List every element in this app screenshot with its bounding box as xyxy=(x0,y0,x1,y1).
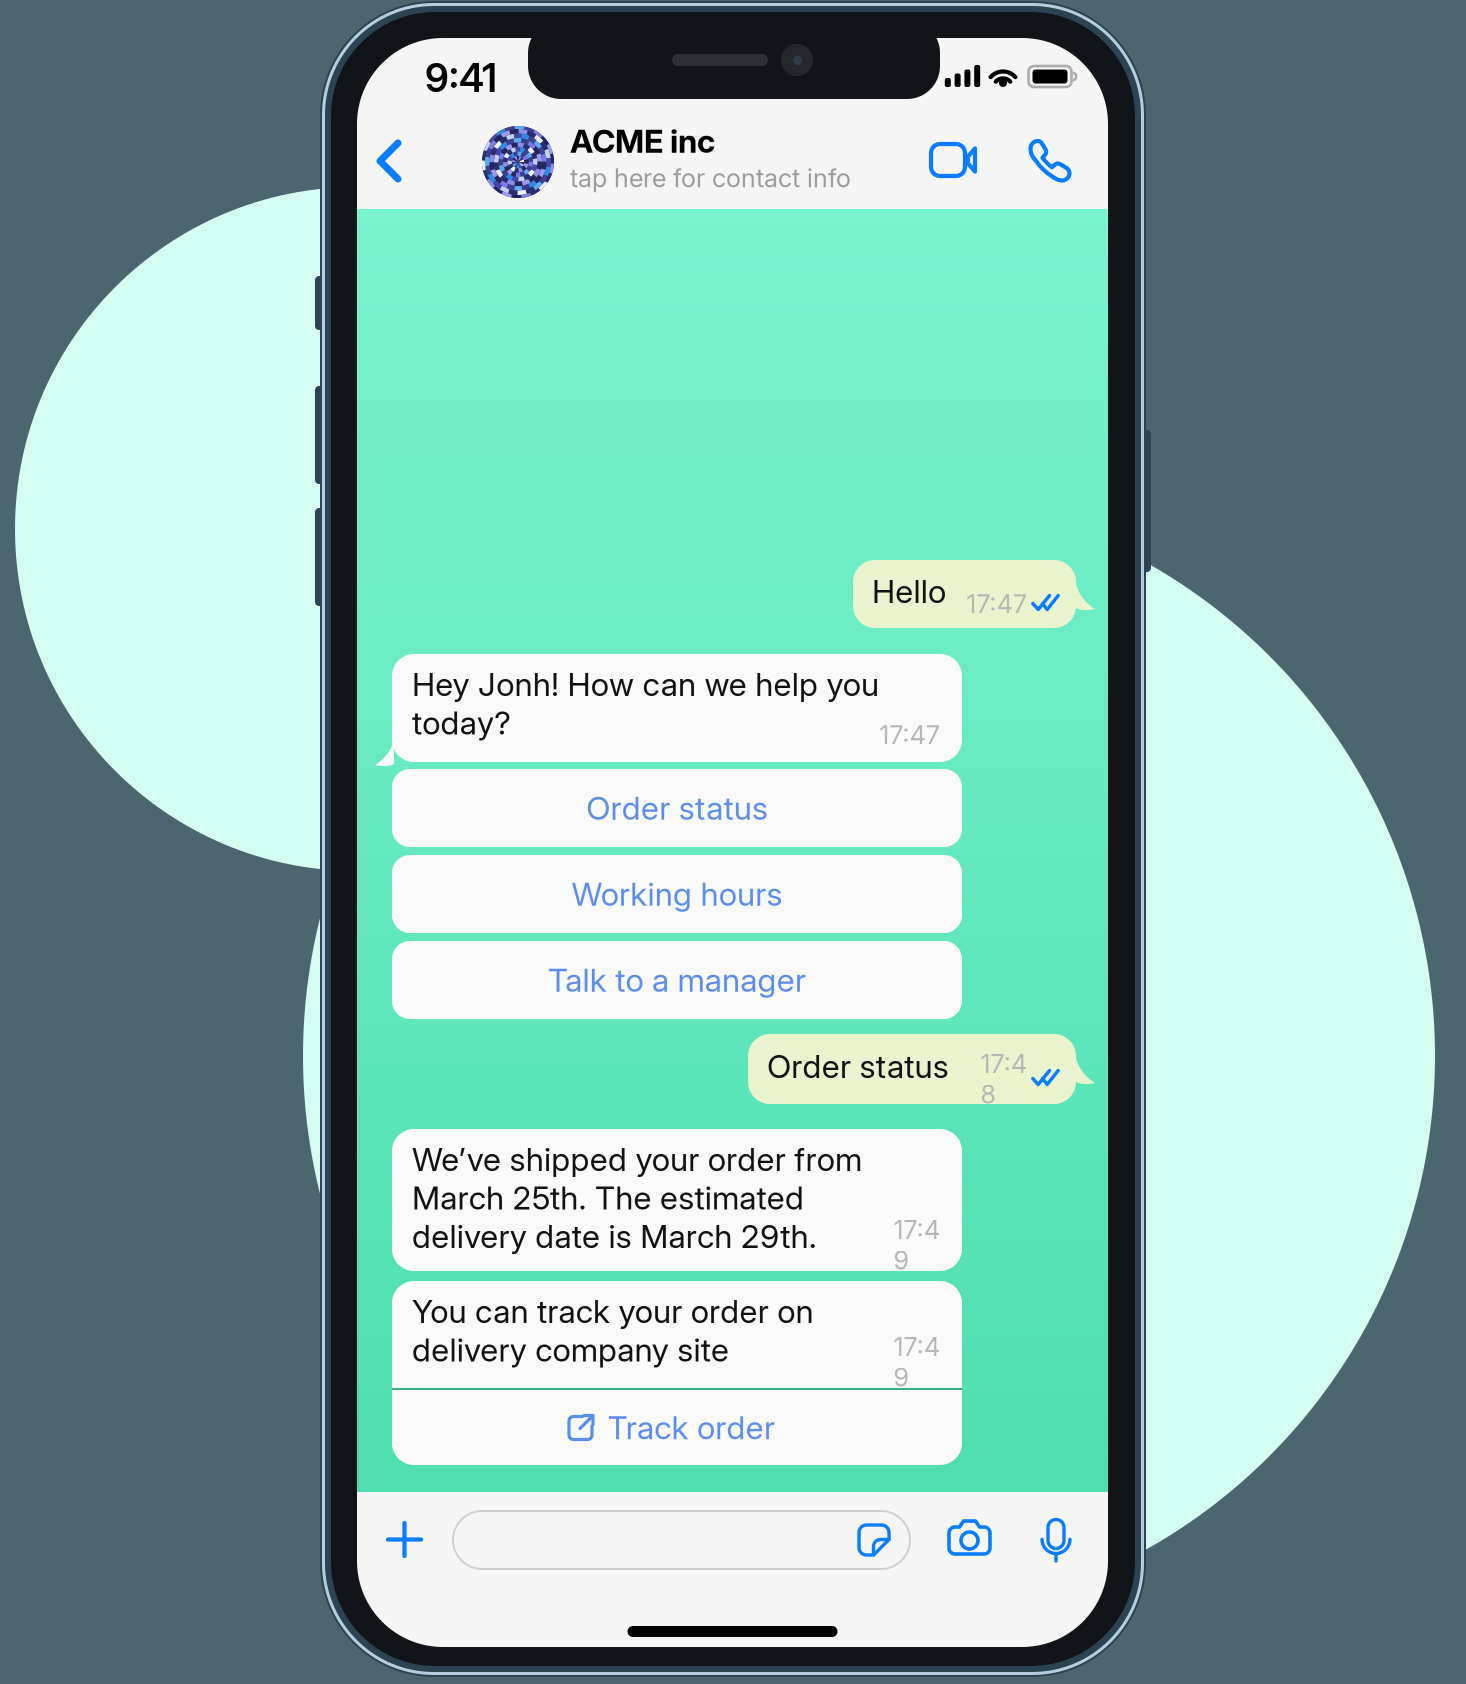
staticText: March 25th. The estimated xyxy=(412,1178,804,1217)
staticText: Hey Jonh! How can we help you xyxy=(412,665,879,704)
staticText: 17:49 xyxy=(893,1331,940,1393)
button[interactable]: Stickers xyxy=(853,1519,895,1561)
staticText: Order status xyxy=(586,789,768,827)
staticText: Order status xyxy=(767,1047,949,1086)
button[interactable]: Voice call xyxy=(1027,137,1073,185)
staticText: 17:47 xyxy=(966,589,1027,619)
button[interactable]: Talk to a manager xyxy=(392,941,962,1019)
staticText: 9:41 xyxy=(425,55,497,101)
staticText: today? xyxy=(412,703,511,742)
staticText: You can track your order on xyxy=(412,1292,813,1331)
staticText: delivery company site xyxy=(412,1330,729,1369)
staticText: Working hours xyxy=(571,875,782,913)
staticText: delivery date is March 29th. xyxy=(412,1217,817,1256)
button[interactable]: Camera xyxy=(947,1518,992,1557)
staticText: 17:48 xyxy=(980,1048,1027,1110)
button[interactable]: Working hours xyxy=(392,855,962,933)
staticText: Track order xyxy=(607,1408,775,1447)
button[interactable]: Voice message xyxy=(1040,1518,1072,1563)
staticText: ACME inc xyxy=(570,122,715,160)
staticText: 17:49 xyxy=(893,1214,940,1276)
staticText: tap here for contact info xyxy=(570,163,851,193)
staticText: Talk to a manager xyxy=(548,961,806,999)
button[interactable]: Back xyxy=(359,131,419,191)
button[interactable]: Attach xyxy=(386,1521,423,1558)
staticText: Hello xyxy=(872,572,946,611)
staticText: We’ve shipped your order from xyxy=(412,1140,862,1179)
button[interactable]: Video call xyxy=(929,144,977,176)
button[interactable]: Track order xyxy=(392,1390,962,1465)
button[interactable]: ACME inc xyxy=(482,119,902,205)
button[interactable]: Order status xyxy=(392,769,962,847)
staticText: 17:47 xyxy=(879,720,940,750)
